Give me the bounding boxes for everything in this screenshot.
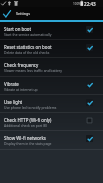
staticText: Vibrate <box>4 81 19 87</box>
button[interactable]: Vibrate <box>0 77 103 95</box>
staticText: Additional check on port 80 <box>4 123 48 128</box>
staticText: Delete data of the old checks <box>4 50 50 55</box>
button[interactable]: Start on boot <box>0 22 103 40</box>
staticText: Reset statistics on boot <box>4 44 52 50</box>
staticText: Check frequency <box>4 62 39 68</box>
staticText: Slower means less traffic and battery <box>4 68 62 73</box>
staticText: Show Wi-fi networks <box>4 135 46 141</box>
button[interactable]: Check frequency <box>0 58 103 77</box>
button[interactable]: Use light <box>0 95 103 113</box>
staticText: Start on boot <box>4 26 32 32</box>
staticText: 100% <box>73 2 82 6</box>
button[interactable]: Show Wi-fi networks <box>0 131 103 150</box>
staticText: Display them in the stats page <box>4 141 52 146</box>
staticText: Start the service automatically <box>4 32 52 37</box>
staticText: Settings <box>16 11 31 16</box>
staticText: Use light <box>4 99 23 105</box>
staticText: Vibrate at internet up <box>4 87 38 92</box>
button[interactable]: Check HTTP (Wi-fi only) <box>0 113 103 131</box>
staticText: 22:43 <box>84 1 96 7</box>
button[interactable]: Reset statistics on boot <box>0 40 103 58</box>
staticText: Check HTTP (Wi-fi only) <box>4 117 52 123</box>
staticText: Use phone led to notify problems <box>4 105 57 110</box>
button[interactable]: Settings <box>0 7 103 20</box>
